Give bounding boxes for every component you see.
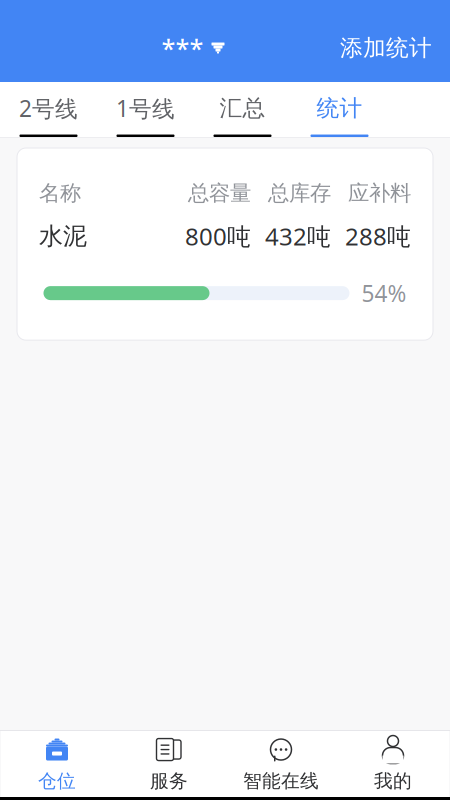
- staticText: 汇总: [219, 94, 265, 122]
- button[interactable]: 2号线: [0, 82, 97, 137]
- staticText: 智能在线: [243, 769, 319, 792]
- staticText: 总库存: [268, 180, 331, 206]
- staticText: ***: [161, 31, 203, 65]
- staticText: 432吨: [265, 220, 331, 252]
- button[interactable]: ***: [155, 25, 230, 71]
- staticText: 名称: [39, 180, 81, 206]
- staticText: 54%: [361, 278, 406, 308]
- staticText: 仓位: [38, 769, 76, 792]
- staticText: 水泥: [39, 221, 87, 251]
- staticText: 总容量: [188, 180, 251, 206]
- staticText: 我的: [374, 769, 412, 792]
- staticText: 统计: [316, 94, 362, 122]
- button[interactable]: 添加统计: [326, 26, 446, 70]
- staticText: 应补料: [348, 180, 411, 206]
- staticText: 添加统计: [340, 34, 432, 62]
- staticText: 800吨: [185, 220, 251, 252]
- button[interactable]: 智能在线: [225, 731, 337, 797]
- staticText: 1号线: [116, 93, 175, 123]
- button[interactable]: 服务: [113, 731, 225, 797]
- staticText: 2号线: [19, 93, 78, 123]
- staticText: 服务: [150, 769, 188, 792]
- button[interactable]: 仓位: [1, 731, 113, 797]
- button[interactable]: 汇总: [194, 82, 291, 137]
- button[interactable]: 1号线: [97, 82, 194, 137]
- staticText: 288吨: [345, 220, 411, 252]
- button[interactable]: 我的: [337, 731, 449, 797]
- button[interactable]: 统计: [291, 82, 388, 137]
